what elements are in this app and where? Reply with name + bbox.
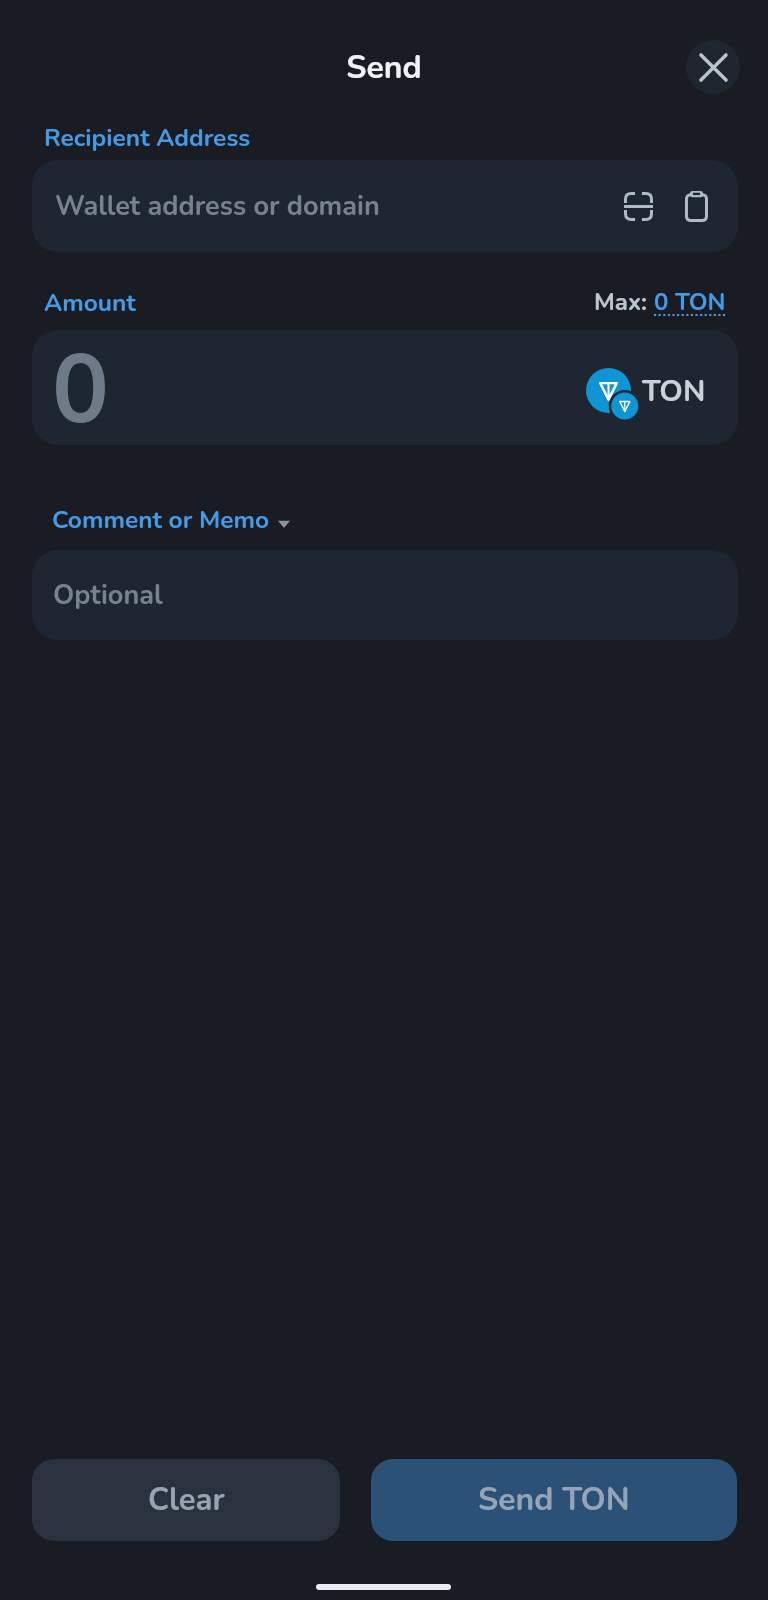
staticText: Comment or Memo [52, 503, 270, 536]
staticText: Recipient Address [44, 121, 251, 154]
button[interactable]: Paste from clipboard [667, 177, 725, 235]
button[interactable]: Wallet address or domain [32, 160, 738, 252]
staticText: Wallet address or domain [55, 188, 380, 225]
staticText: 0 [52, 330, 110, 441]
button[interactable]: Clear [32, 1459, 340, 1541]
staticText: Clear [148, 1479, 225, 1521]
button[interactable]: Optional [32, 550, 738, 640]
button[interactable]: 0 TON [654, 286, 726, 319]
button[interactable]: Send TON [371, 1459, 737, 1541]
button[interactable]: Close [686, 40, 740, 94]
button[interactable]: Comment or Memo [52, 503, 290, 536]
staticText: Max: [594, 286, 654, 319]
staticText: TON [642, 371, 706, 412]
staticText: Send TON [478, 1478, 630, 1522]
button[interactable]: 0 [32, 330, 738, 445]
button[interactable]: Scan QR code [609, 177, 667, 235]
staticText: Send [0, 46, 768, 90]
staticText: Optional [53, 577, 163, 614]
staticText: Amount [44, 286, 136, 319]
